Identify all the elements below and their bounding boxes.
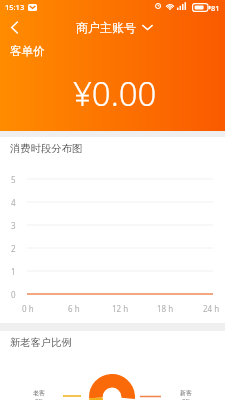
staticText: 0: [11, 289, 16, 299]
staticText: 老客: [33, 389, 45, 397]
staticText: 24 h: [203, 303, 220, 314]
staticText: ¥0.00: [73, 71, 157, 116]
staticText: 新客: [180, 389, 192, 397]
staticText: 客单价: [10, 44, 45, 58]
staticText: 2: [11, 243, 16, 253]
staticText: 0%: [35, 397, 44, 400]
staticText: 4: [11, 197, 16, 207]
button[interactable]: 商户主账号: [76, 20, 153, 35]
staticText: 0%: [182, 397, 191, 400]
staticText: 1: [11, 266, 16, 276]
staticText: 6 h: [68, 303, 80, 314]
staticText: 消费时段分布图: [10, 142, 83, 155]
staticText: 商户主账号: [76, 20, 136, 35]
staticText: 15:13: [5, 2, 25, 12]
staticText: 5: [11, 174, 16, 184]
staticText: 新老客户比例: [10, 336, 72, 349]
button[interactable]: Back: [0, 14, 28, 40]
staticText: 12 h: [112, 303, 129, 314]
staticText: 0 h: [22, 303, 34, 314]
staticText: 81: [211, 3, 220, 13]
staticText: 3: [11, 220, 16, 230]
staticText: 18 h: [157, 303, 174, 314]
